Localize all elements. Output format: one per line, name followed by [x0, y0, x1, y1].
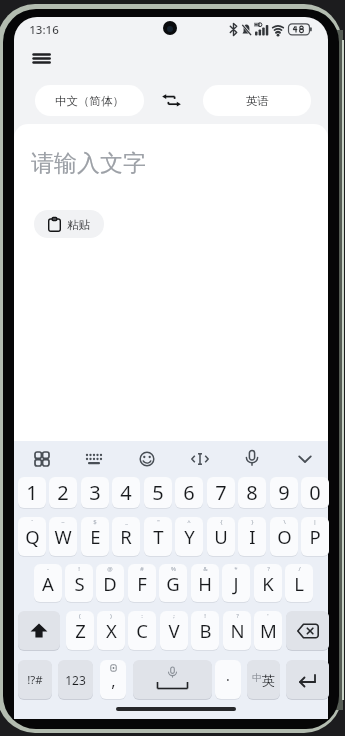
button[interactable]: [133, 660, 212, 699]
staticText: !: [204, 612, 206, 620]
staticText: I: [249, 524, 256, 549]
staticText: `: [31, 518, 33, 526]
staticText: /: [298, 565, 301, 573]
button[interactable]: O: [270, 517, 298, 556]
staticText: R: [120, 524, 132, 549]
staticText: ?: [236, 612, 239, 620]
button[interactable]: Y: [175, 517, 203, 556]
staticText: ): [110, 612, 112, 620]
button[interactable]: ·: [215, 660, 241, 699]
staticText: 13:16: [29, 22, 59, 37]
button[interactable]: 5: [144, 477, 172, 508]
button[interactable]: 0: [301, 477, 329, 508]
button[interactable]: ,: [100, 660, 126, 699]
staticText: G: [166, 571, 180, 596]
button[interactable]: C: [128, 611, 156, 650]
staticText: 9: [278, 479, 290, 506]
button[interactable]: [156, 87, 186, 115]
staticText: (: [79, 612, 81, 620]
button[interactable]: P: [301, 517, 329, 556]
button[interactable]: M: [254, 611, 282, 650]
staticText: 英语: [246, 94, 269, 108]
button[interactable]: [286, 611, 329, 650]
staticText: Y: [184, 524, 195, 549]
staticText: ~: [61, 518, 65, 526]
button[interactable]: 中文（简体）: [35, 85, 144, 116]
staticText: X: [106, 618, 117, 643]
staticText: J: [233, 571, 239, 596]
staticText: \: [283, 518, 286, 526]
button[interactable]: Z: [66, 611, 94, 650]
button[interactable]: [291, 445, 319, 473]
button[interactable]: S: [65, 564, 93, 602]
button[interactable]: N: [223, 611, 251, 650]
staticText: S: [74, 571, 85, 596]
button[interactable]: F: [128, 564, 156, 602]
staticText: $: [93, 518, 97, 526]
button[interactable]: 6: [175, 477, 203, 508]
staticText: 7: [215, 479, 227, 506]
button[interactable]: 3: [81, 477, 109, 508]
button[interactable]: K: [254, 564, 282, 602]
button[interactable]: E: [81, 517, 109, 556]
staticText: N: [230, 618, 245, 643]
staticText: O: [277, 524, 292, 549]
staticText: 6: [183, 479, 195, 506]
staticText: C: [136, 618, 148, 643]
button[interactable]: R: [112, 517, 140, 556]
button[interactable]: [28, 48, 55, 69]
button[interactable]: I: [238, 517, 266, 556]
button[interactable]: T: [144, 517, 172, 556]
staticText: &: [203, 565, 208, 573]
button[interactable]: 8: [238, 477, 266, 508]
staticText: ·: [226, 670, 230, 689]
button[interactable]: X: [97, 611, 125, 650]
button[interactable]: J: [222, 564, 250, 602]
button[interactable]: [18, 611, 60, 650]
button[interactable]: W: [49, 517, 77, 556]
staticText: ': [267, 612, 269, 620]
staticText: L: [294, 571, 304, 596]
button[interactable]: Q: [18, 517, 46, 556]
button[interactable]: L: [285, 564, 313, 602]
button[interactable]: 123: [58, 660, 93, 699]
button[interactable]: H: [191, 564, 219, 602]
button[interactable]: [238, 445, 266, 473]
button[interactable]: 9: [270, 477, 298, 508]
button[interactable]: G: [159, 564, 187, 602]
button[interactable]: 英语: [203, 85, 311, 116]
button[interactable]: [28, 445, 56, 473]
button[interactable]: [80, 445, 108, 473]
staticText: %: [171, 565, 176, 573]
button[interactable]: 7: [207, 477, 235, 508]
staticText: 中文（简体）: [55, 94, 124, 108]
button[interactable]: !?#: [18, 660, 52, 699]
button[interactable]: 4: [112, 477, 140, 508]
button[interactable]: 2: [49, 477, 77, 508]
staticText: {: [220, 518, 223, 526]
staticText: P: [309, 524, 321, 549]
staticText: A: [42, 571, 54, 596]
staticText: ;: [173, 612, 175, 620]
button[interactable]: [186, 445, 214, 473]
button[interactable]: V: [160, 611, 188, 650]
button[interactable]: 粘贴: [34, 210, 104, 238]
staticText: Z: [75, 618, 86, 643]
button[interactable]: A: [34, 564, 62, 602]
button[interactable]: [286, 660, 329, 699]
button[interactable]: U: [207, 517, 235, 556]
staticText: ?: [267, 565, 270, 573]
staticText: !?#: [27, 672, 43, 688]
button[interactable]: 中: [247, 660, 280, 699]
staticText: #: [140, 565, 144, 573]
button[interactable]: D: [96, 564, 124, 602]
staticText: V: [168, 618, 180, 643]
button[interactable]: 1: [18, 477, 46, 508]
staticText: 2: [57, 479, 69, 506]
button[interactable]: [133, 445, 161, 473]
staticText: @: [107, 565, 113, 573]
button[interactable]: B: [191, 611, 219, 650]
staticText: 3: [89, 479, 101, 506]
staticText: W: [54, 524, 72, 549]
staticText: !: [78, 565, 80, 573]
